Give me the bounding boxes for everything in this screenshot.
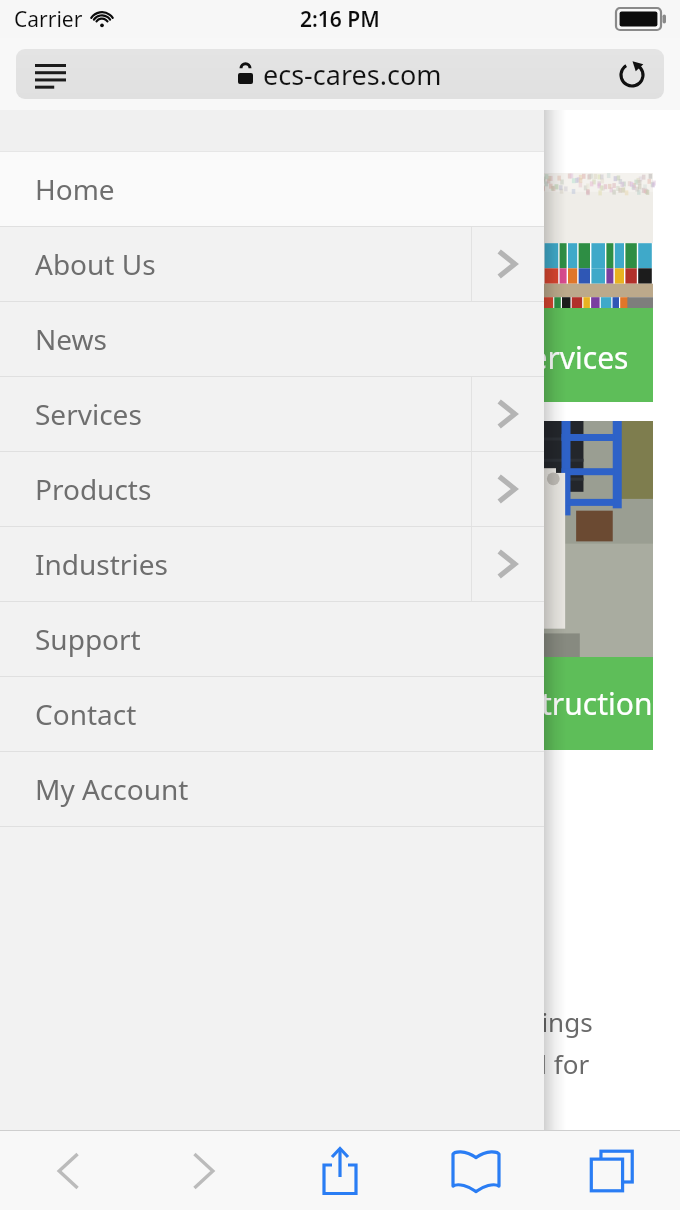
button[interactable]: Industries — [0, 527, 544, 601]
staticText: Services — [35, 395, 142, 433]
button[interactable]: Support — [0, 602, 544, 676]
button[interactable]: Back — [0, 1131, 136, 1210]
button[interactable]: News — [0, 302, 544, 376]
staticText: Industries — [35, 545, 168, 583]
button[interactable]: Bookmarks — [408, 1131, 544, 1210]
staticText: Support — [35, 620, 141, 658]
staticText: cate markings — [420, 1004, 593, 1039]
button[interactable]: Reader view — [28, 54, 72, 94]
button[interactable]: Expand Industries — [472, 527, 544, 601]
staticText: ecs-cares.com — [263, 56, 442, 93]
button[interactable]: About Us — [0, 227, 544, 301]
button[interactable]: Home — [0, 152, 544, 226]
button[interactable]: Reload — [612, 54, 652, 94]
button[interactable]: Services — [0, 377, 544, 451]
staticText: Carrier — [14, 5, 83, 34]
staticText: 2:16 PM — [300, 5, 380, 34]
button[interactable]: Share — [272, 1131, 408, 1210]
staticText: Products — [35, 470, 152, 508]
button[interactable]: Expand About Us — [472, 227, 544, 301]
button[interactable]: Forward — [136, 1131, 272, 1210]
button[interactable]: Contact — [0, 677, 544, 751]
button[interactable]: My Account — [0, 752, 544, 826]
button[interactable]: Products — [0, 452, 544, 526]
staticText: News — [35, 320, 107, 358]
staticText: Construction — [471, 683, 653, 724]
button[interactable]: Expand Products — [472, 452, 544, 526]
staticText: Contact — [35, 695, 137, 733]
button[interactable]: Tabs — [544, 1131, 680, 1210]
staticText: My Account — [35, 770, 189, 808]
button[interactable]: Expand Services — [472, 377, 544, 451]
button[interactable]: Reader view — [16, 49, 664, 99]
staticText: ing it ideal for — [420, 1046, 590, 1081]
staticText: Services — [514, 337, 629, 378]
staticText: About Us — [35, 245, 156, 283]
staticText: Home — [35, 170, 115, 208]
